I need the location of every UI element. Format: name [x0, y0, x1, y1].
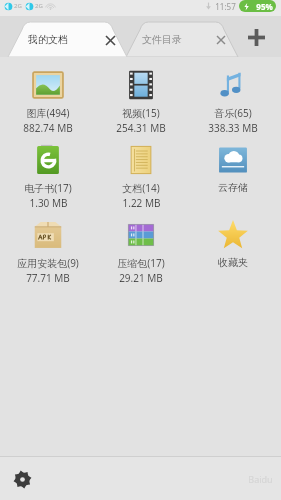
- button[interactable]: 文件目录: [126, 22, 238, 57]
- staticText: 应用安装包(9): [17, 256, 79, 270]
- button[interactable]: 云存储: [188, 139, 278, 198]
- button[interactable]: 视频(15): [96, 64, 186, 139]
- staticText: 收藏夹: [218, 256, 248, 269]
- button[interactable]: New tab: [239, 20, 273, 54]
- button[interactable]: 图库(494): [3, 64, 93, 139]
- staticText: 2G: [35, 2, 43, 10]
- staticText: 压缩包(17): [117, 256, 165, 270]
- staticText: 云存储: [218, 181, 248, 194]
- button[interactable]: 收藏夹: [188, 214, 278, 273]
- button[interactable]: Close tab 文件目录: [214, 33, 228, 47]
- staticText: 音乐(65): [214, 106, 252, 120]
- staticText: 882.74 MB: [23, 121, 73, 135]
- staticText: 254.31 MB: [116, 121, 166, 135]
- staticText: 文档(14): [122, 181, 160, 195]
- button[interactable]: Settings: [6, 463, 38, 495]
- staticText: 95%: [256, 1, 273, 12]
- staticText: 1.30 MB: [29, 196, 68, 210]
- staticText: 我的文档: [28, 33, 68, 46]
- button[interactable]: 应用安装包(9): [3, 214, 93, 289]
- staticText: 电子书(17): [24, 181, 72, 195]
- staticText: 11:57: [215, 1, 236, 12]
- staticText: 29.21 MB: [119, 271, 163, 285]
- staticText: 文件目录: [142, 33, 182, 46]
- staticText: Baidu: [248, 473, 273, 485]
- staticText: 2G: [14, 2, 22, 10]
- button[interactable]: 文档(14): [96, 139, 186, 214]
- button[interactable]: 电子书(17): [3, 139, 93, 214]
- staticText: 1.22 MB: [122, 196, 161, 210]
- button[interactable]: 音乐(65): [188, 64, 278, 139]
- staticText: 338.33 MB: [208, 121, 258, 135]
- button[interactable]: Close tab 我的文档: [102, 32, 118, 48]
- button[interactable]: 压缩包(17): [96, 214, 186, 289]
- staticText: 77.71 MB: [26, 271, 70, 285]
- button[interactable]: 我的文档: [8, 22, 127, 57]
- staticText: 图库(494): [26, 106, 70, 120]
- staticText: 视频(15): [122, 106, 160, 120]
